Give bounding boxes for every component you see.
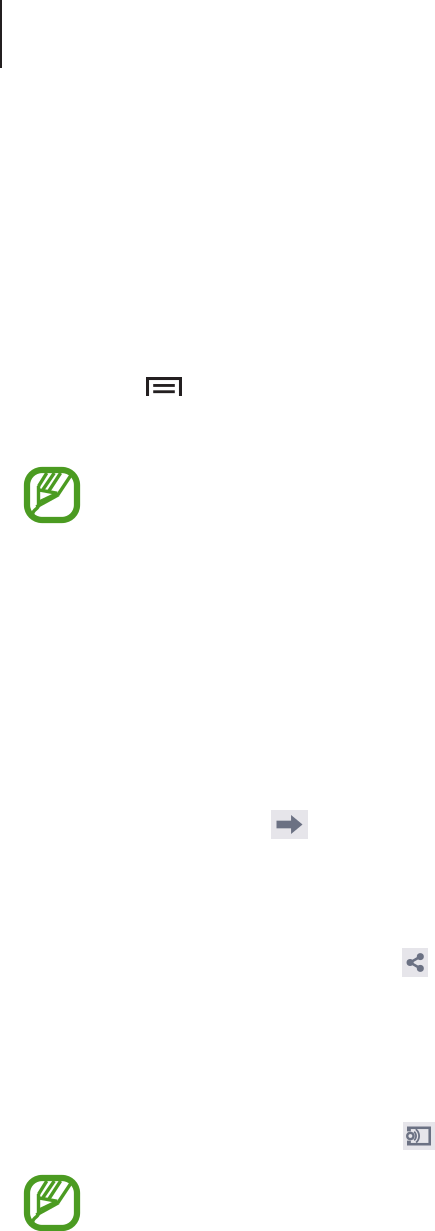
button[interactable]: S Note <box>19 1170 85 1231</box>
button[interactable]: Options <box>140 371 188 402</box>
button[interactable]: Next <box>271 810 308 839</box>
button[interactable]: S Note <box>19 462 85 528</box>
button[interactable]: Android Beam <box>403 1122 435 1150</box>
button[interactable]: Share <box>402 948 428 977</box>
